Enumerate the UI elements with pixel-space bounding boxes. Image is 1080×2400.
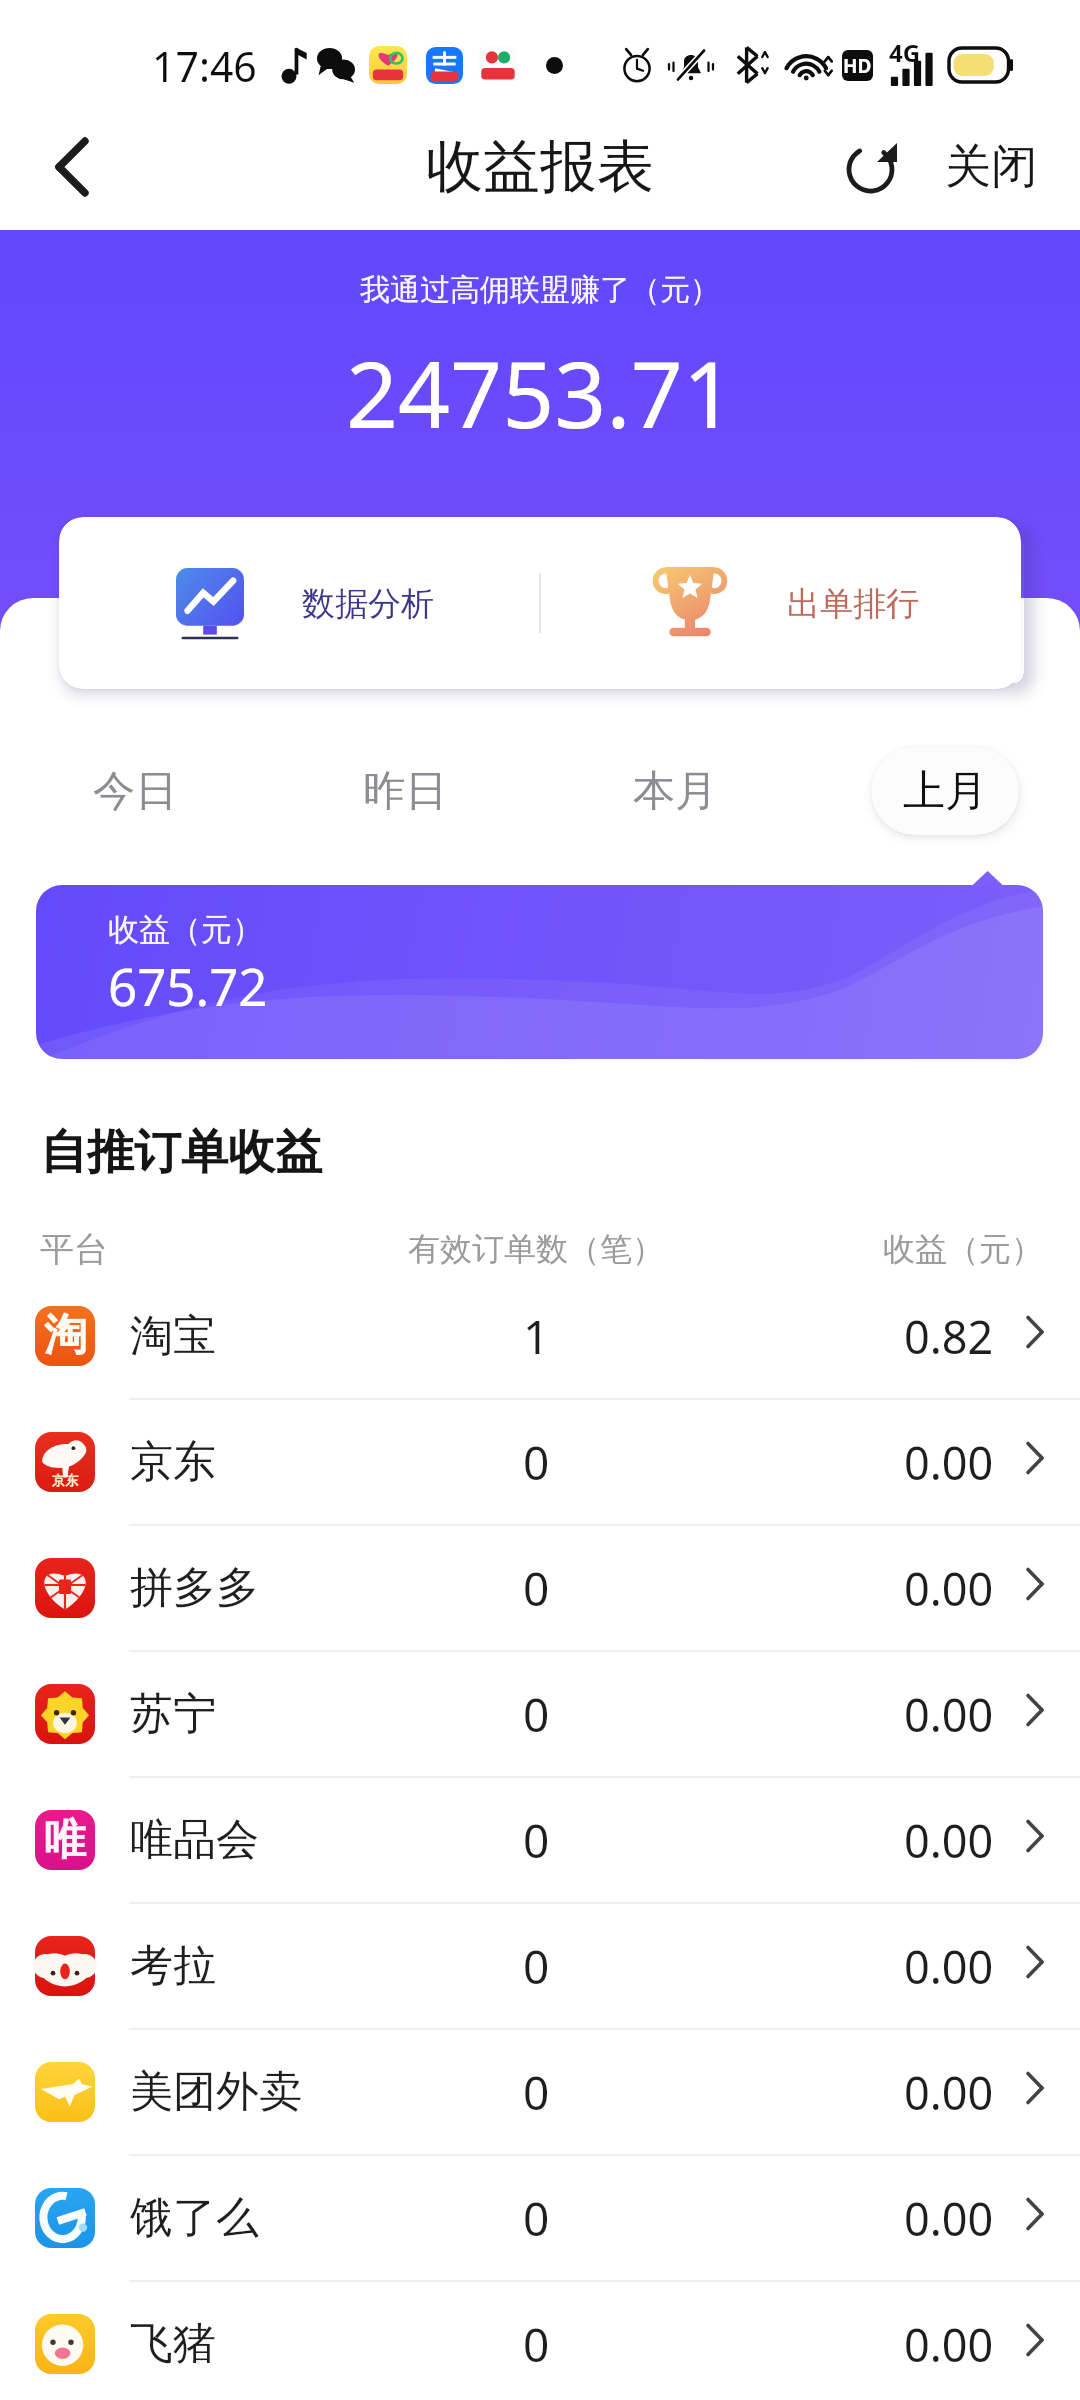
staticText: 上月 — [903, 765, 987, 818]
button[interactable]: 饿了么 — [0, 2156, 1080, 2282]
staticText: 收益（元） — [108, 910, 263, 949]
staticText: 0.00 — [904, 1558, 994, 1619]
staticText: 0 — [523, 1431, 550, 1494]
staticText: 唯品会 — [130, 1813, 259, 1867]
staticText: 自推订单收益 — [40, 1123, 322, 1182]
staticText: 0 — [523, 2061, 550, 2124]
staticText: 0 — [523, 1809, 550, 1872]
staticText: 0.00 — [904, 1936, 994, 1997]
button[interactable]: 关闭 — [929, 126, 1053, 208]
staticText: 0.00 — [904, 2314, 994, 2375]
button[interactable]: 昨日 — [270, 747, 540, 835]
button[interactable]: 淘 — [0, 1274, 1080, 1400]
staticText: HD — [843, 53, 872, 79]
button[interactable]: 美团外卖 — [0, 2030, 1080, 2156]
staticText: 1 — [523, 1305, 550, 1368]
staticText: 0 — [523, 2313, 550, 2376]
button[interactable]: Back — [35, 130, 109, 204]
staticText: 考拉 — [130, 1939, 216, 1993]
staticText: 本月 — [633, 765, 717, 818]
staticText: 饿了么 — [130, 2191, 259, 2245]
staticText: 24753.71 — [346, 331, 735, 455]
staticText: 0 — [523, 1683, 550, 1746]
staticText: 飞猪 — [130, 2317, 216, 2371]
button[interactable]: 考拉 — [0, 1904, 1080, 2030]
staticText: 京东 — [130, 1435, 216, 1489]
staticText: 淘宝 — [130, 1309, 216, 1363]
staticText: 0 — [523, 1935, 550, 1998]
button[interactable]: 本月 — [540, 747, 810, 835]
staticText: 京东 — [52, 1472, 78, 1488]
staticText: 675.72 — [108, 951, 268, 1020]
staticText: 唯 — [44, 1814, 86, 1867]
staticText: 今日 — [93, 765, 177, 818]
staticText: 收益报表 — [426, 131, 654, 203]
staticText: 数据分析 — [302, 583, 434, 625]
staticText: 0.82 — [904, 1306, 994, 1367]
staticText: 淘 — [44, 1308, 87, 1362]
button[interactable]: 上月 — [810, 747, 1080, 835]
staticText: 0.00 — [904, 2062, 994, 2123]
button[interactable]: 京东 — [0, 1400, 1080, 1526]
button[interactable]: 唯 — [0, 1778, 1080, 1904]
button[interactable]: Refresh — [829, 125, 913, 209]
staticText: 苏宁 — [130, 1687, 216, 1741]
staticText: 我通过高佣联盟赚了（元） — [360, 271, 720, 309]
staticText: 0 — [523, 2187, 550, 2250]
staticText: 收益（元） — [883, 1229, 1043, 1269]
button[interactable]: 今日 — [0, 747, 270, 835]
staticText: 昨日 — [363, 765, 447, 818]
staticText: 17:46 — [152, 38, 257, 94]
staticText: 拼多多 — [130, 1561, 259, 1615]
staticText: 有效订单数（笔） — [408, 1229, 664, 1269]
button[interactable]: 飞猪 — [0, 2282, 1080, 2400]
staticText: 美团外卖 — [130, 2065, 302, 2119]
staticText: 关闭 — [945, 138, 1037, 196]
button[interactable]: 数据分析 — [59, 517, 539, 689]
staticText: 0.00 — [904, 1432, 994, 1493]
staticText: 平台 — [40, 1228, 108, 1271]
staticText: 4G — [889, 36, 921, 69]
staticText: 0.00 — [904, 1810, 994, 1871]
button[interactable]: 出单排行 — [541, 517, 1021, 689]
button[interactable]: 拼多多 — [0, 1526, 1080, 1652]
button[interactable]: 苏宁 — [0, 1652, 1080, 1778]
staticText: 0.00 — [904, 1684, 994, 1745]
staticText: 0.00 — [904, 2188, 994, 2249]
staticText: 0 — [523, 1557, 550, 1620]
staticText: 出单排行 — [787, 583, 919, 625]
